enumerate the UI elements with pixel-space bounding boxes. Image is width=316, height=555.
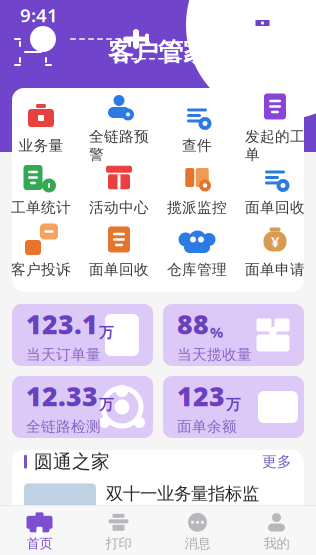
staticText: 打印 [105,535,131,552]
button[interactable]: 业务量 [6,100,76,156]
staticText: 123 [177,378,225,414]
staticText: 12.33 [26,378,98,414]
button[interactable]: 查件 [162,100,232,156]
staticText: ¥ [271,232,279,251]
button[interactable]: 双十一业务量指标监测 [12,483,304,526]
staticText: 9:41 [20,3,58,27]
button[interactable]: 首页 [0,509,79,555]
button[interactable]: 我的 [237,509,316,555]
button[interactable]: 活动中心 [84,162,154,218]
staticText: % [210,322,223,342]
staticText: 首页 [26,535,52,552]
button[interactable]: 打印 [79,509,158,555]
button[interactable]: 扫一扫 [16,35,50,69]
staticText: 万 [226,396,241,414]
staticText: 消息 [184,535,210,552]
staticText: 查件 [182,136,212,154]
button[interactable]: 全链路预警 [84,100,154,156]
button[interactable]: 工单统计 [6,162,76,218]
staticText: 面单回收 [245,198,305,216]
staticText: 面单回收 [89,260,149,278]
button[interactable]: 发起的工单 [240,100,310,156]
staticText: 万 [99,324,114,342]
staticText: 当天揽收量 [177,346,252,364]
staticText: 揽派监控 [167,198,227,216]
button[interactable]: 客户投诉 [6,224,76,280]
staticText: 工单统计 [11,198,71,216]
button[interactable]: 更多 [262,453,292,471]
staticText: 业务量 [18,136,63,154]
button[interactable]: 揽派监控 [162,162,232,218]
staticText: 我的 [263,535,289,552]
staticText: 双十一业务量指标监测 [106,483,259,526]
staticText: 全链路预警 [89,127,149,163]
staticText: 面单余额 [177,418,237,436]
staticText: 圆通之家 [34,450,110,473]
staticText: 88 [177,306,209,342]
button[interactable]: ¥ [240,224,310,280]
staticText: 当天订单量 [26,346,101,364]
button[interactable]: 面单回收 [84,224,154,280]
staticText: 活动中心 [89,198,149,216]
staticText: 更多 [262,453,292,471]
staticText: 客户投诉 [11,260,71,278]
staticText: 客户管家 [108,36,208,67]
button[interactable]: 消息 [158,509,237,555]
staticText: 123.1 [26,306,98,342]
staticText: 全链路检测 [26,418,101,436]
button[interactable]: 面单回收 [240,162,310,218]
staticText: 万 [99,396,114,414]
staticText: 发起的工单 [245,127,305,163]
staticText: 仓库管理 [167,260,227,278]
staticText: 面单申请 [245,260,305,278]
button[interactable]: 仓库管理 [162,224,232,280]
